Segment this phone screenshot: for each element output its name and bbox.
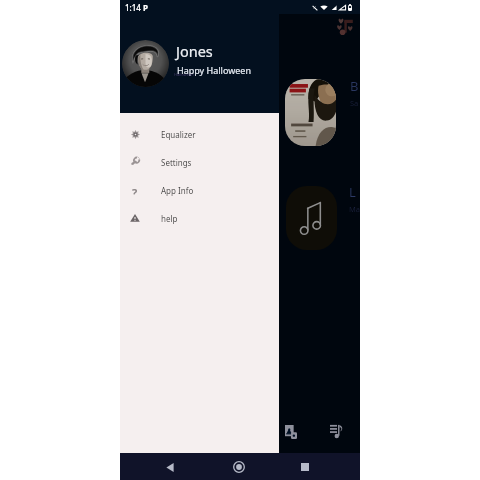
staticText: Happy Halloween [177, 64, 251, 76]
staticText: help [161, 213, 178, 224]
staticText: App Info [161, 185, 194, 196]
button[interactable]: Recents [292, 454, 318, 480]
button[interactable]: App logo [333, 15, 357, 39]
staticText: Halloween [174, 72, 194, 77]
staticText: Equalizer [161, 129, 196, 140]
button[interactable]: Files [278, 419, 303, 444]
button[interactable]: Equalizer [120, 120, 279, 148]
button[interactable]: ? [120, 176, 279, 204]
staticText: Settings [161, 157, 192, 168]
button[interactable]: Home [226, 454, 252, 480]
staticText: Bekhayali [350, 77, 360, 95]
button[interactable]: Bekhayali [278, 72, 360, 152]
button[interactable]: Settings [120, 148, 279, 176]
staticText: Sachet Tandon [350, 98, 360, 108]
staticText: 1:14 [125, 2, 141, 13]
button[interactable]: Laung Laachi [278, 178, 360, 258]
staticText: Jones [176, 41, 213, 61]
staticText: Mannat Noor [349, 204, 360, 214]
button[interactable]: Back [157, 454, 183, 480]
button[interactable]: help [120, 204, 279, 232]
staticText: Laung Laachi [349, 183, 360, 201]
staticText: ? [132, 185, 138, 195]
button[interactable]: Playlist [324, 419, 349, 444]
staticText: P [143, 2, 148, 13]
